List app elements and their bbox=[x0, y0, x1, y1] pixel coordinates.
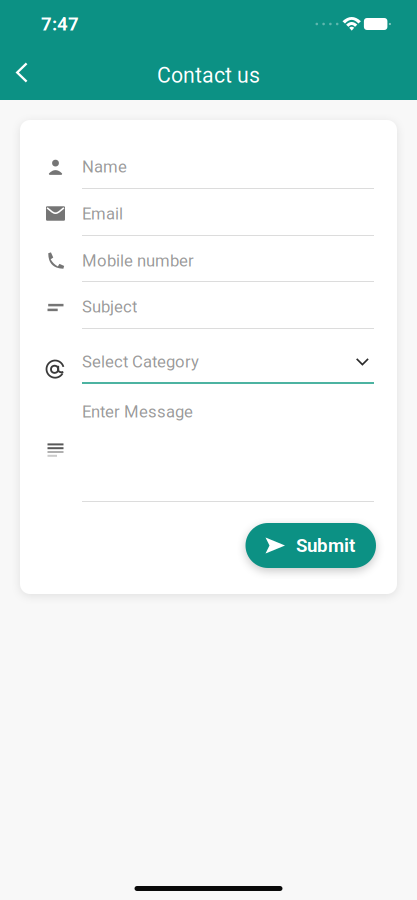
button[interactable]: Email bbox=[45, 189, 374, 236]
button[interactable]: Back bbox=[0, 50, 44, 94]
button[interactable]: Subject bbox=[45, 282, 374, 329]
staticText: Mobile number bbox=[82, 251, 194, 270]
staticText: Email bbox=[82, 204, 123, 223]
button[interactable]: Enter Message bbox=[45, 384, 374, 502]
button[interactable]: Select Category bbox=[45, 337, 374, 384]
staticText: Subject bbox=[82, 297, 137, 316]
staticText: Enter Message bbox=[82, 402, 193, 421]
button[interactable]: Name bbox=[45, 142, 374, 189]
button[interactable]: Submit bbox=[245, 523, 376, 568]
staticText: Submit bbox=[296, 535, 355, 556]
staticText: Select Category bbox=[82, 352, 199, 371]
staticText: Contact us bbox=[157, 63, 260, 88]
staticText: 7:47 bbox=[41, 13, 79, 35]
button[interactable]: Mobile number bbox=[45, 236, 374, 282]
staticText: Name bbox=[82, 157, 127, 176]
